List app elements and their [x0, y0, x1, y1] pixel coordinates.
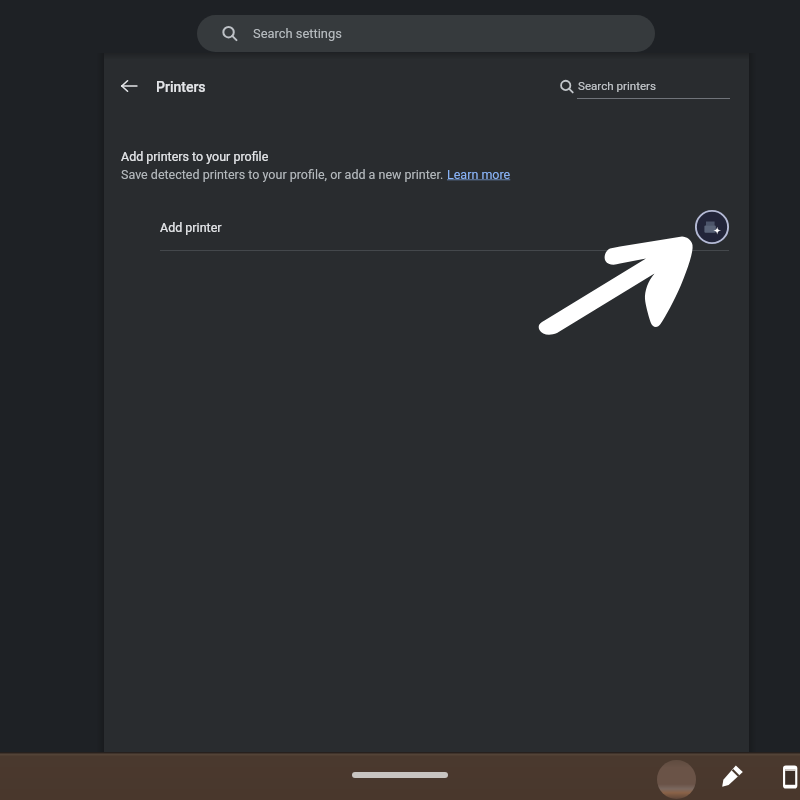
staticText: Search printers [578, 79, 657, 93]
button[interactable]: Profile [657, 760, 696, 799]
button[interactable]: Search settings [197, 15, 655, 52]
button[interactable]: Stylus [719, 763, 745, 789]
staticText: Add printers to your profile [121, 149, 269, 164]
button[interactable]: Search printers [556, 74, 736, 106]
staticText: Search settings [253, 26, 342, 41]
staticText: Add printer [160, 220, 222, 235]
button[interactable]: Add printer [692, 207, 732, 247]
button[interactable]: Learn more [447, 167, 511, 182]
button[interactable]: Add printer [160, 204, 729, 251]
staticText: Printers [156, 79, 206, 95]
staticText: Save detected printers to your profile, … [121, 167, 447, 182]
button[interactable]: Phone hub [776, 764, 800, 790]
button[interactable]: Back [109, 66, 149, 106]
